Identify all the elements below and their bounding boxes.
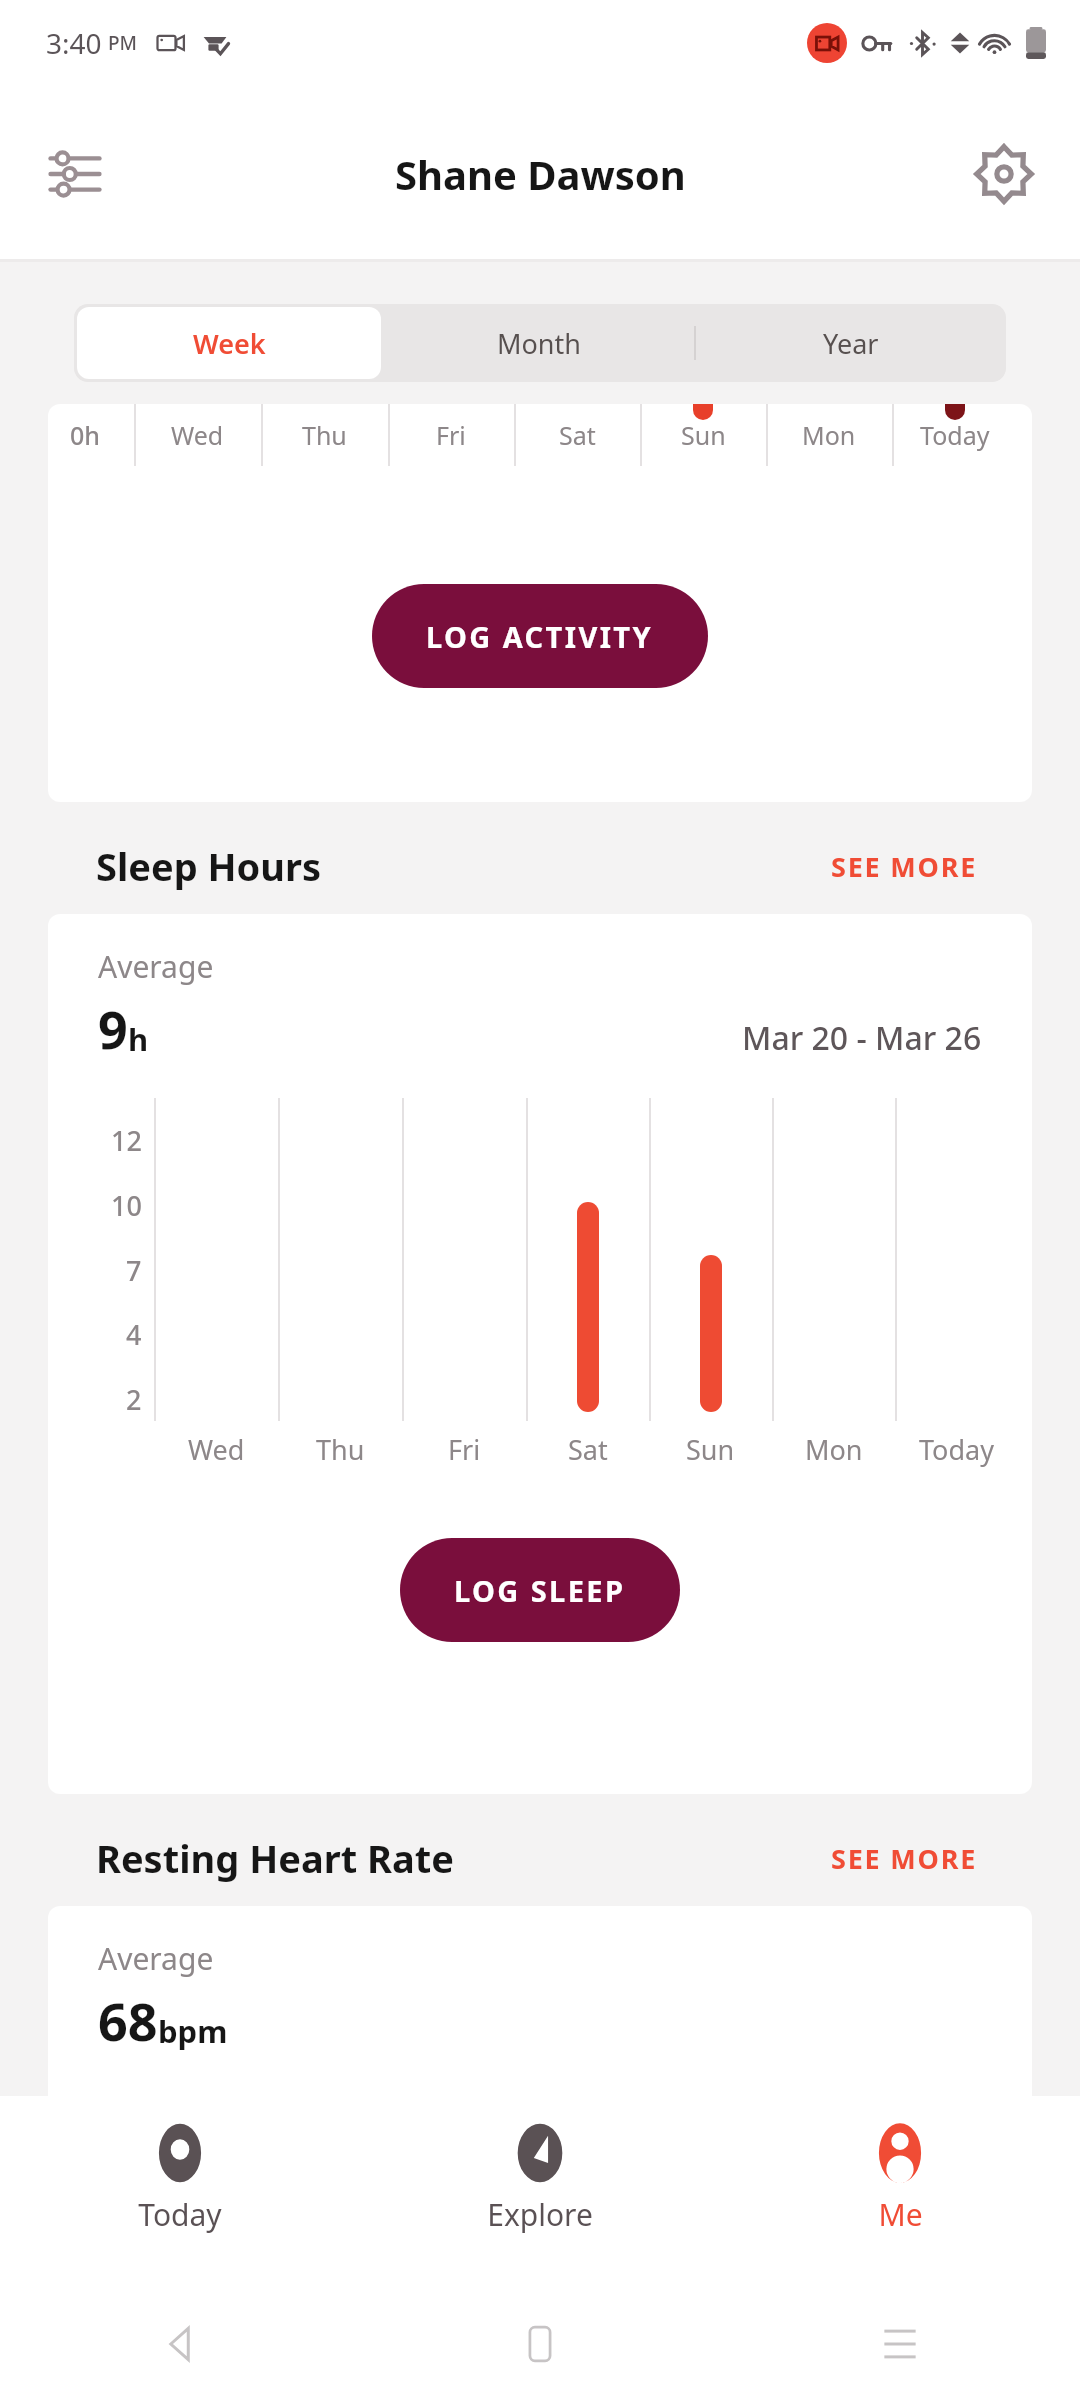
staticText: Today [919,1431,994,1468]
staticText: Mon [805,1431,863,1468]
staticText: Average [98,1938,214,1979]
staticText: Sat [568,1431,608,1468]
button[interactable]: Today [0,2096,360,2288]
staticText: Wed [171,418,224,452]
button[interactable]: Settings [958,128,1050,220]
staticText: Thu [316,1431,365,1468]
button[interactable]: LOG SLEEP [400,1538,680,1642]
staticText: Today [920,418,990,452]
staticText: Mar 20 - Mar 26 [742,1016,982,1060]
staticText: Mon [802,418,856,452]
button[interactable]: SEE MORE [825,842,984,891]
staticText: Sun [686,1431,735,1468]
staticText: SEE MORE [831,848,978,885]
staticText: Me [878,2194,923,2235]
button[interactable]: Explore [360,2096,720,2288]
staticText: Average [98,946,214,987]
staticText: Explore [487,2194,593,2235]
staticText: Wed [188,1431,245,1468]
staticText: 12 [111,1122,142,1159]
button[interactable]: Home [360,2288,720,2400]
staticText: Resting Heart Rate [96,1832,454,1884]
staticText: Sat [559,418,596,452]
button[interactable]: Recent apps [720,2288,1080,2400]
staticText: 7 [126,1252,142,1289]
button[interactable]: Back [0,2288,360,2400]
staticText: 68 [98,1985,158,2056]
staticText: LOG ACTIVITY [426,617,654,656]
staticText: 10 [111,1187,142,1224]
staticText: Sun [681,418,726,452]
button[interactable]: LOG ACTIVITY [372,584,708,688]
button[interactable]: Me [720,2096,1080,2288]
staticText: Fri [448,1431,481,1468]
button[interactable]: Filters [30,129,120,219]
staticText: Fri [436,418,466,452]
staticText: Month [497,325,581,362]
staticText: Week [193,325,266,362]
staticText: SEE MORE [831,1840,978,1877]
staticText: Sleep Hours [96,840,322,892]
button[interactable]: Month [384,304,694,382]
staticText: bpm [158,2010,228,2052]
staticText: 2 [126,1381,142,1418]
staticText: 3:40 [46,24,102,62]
staticText: Shane Dawson [395,147,686,201]
staticText: Year [823,325,879,362]
staticText: 0h [70,418,100,452]
staticText: 4 [126,1316,142,1353]
staticText: Thu [302,418,347,452]
staticText: 9 [98,993,128,1064]
staticText: LOG SLEEP [454,1571,626,1610]
staticText: Today [138,2194,222,2235]
staticText: h [128,1018,149,1060]
button[interactable]: Week [77,307,381,379]
staticText: PM [108,30,138,56]
button[interactable]: Year [696,304,1006,382]
button[interactable]: SEE MORE [825,1834,984,1883]
